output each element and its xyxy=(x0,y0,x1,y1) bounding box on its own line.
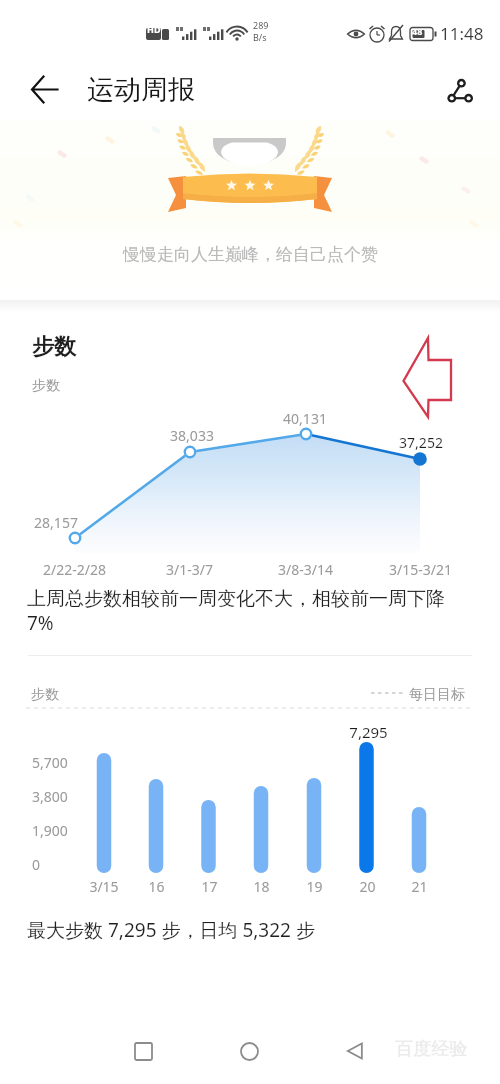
staticText: 38,033 xyxy=(170,426,214,445)
staticText: 最大步数 7,295 步，日均 5,322 步 xyxy=(27,917,315,943)
staticText: 19 xyxy=(306,877,323,896)
staticText: 0 xyxy=(32,855,41,874)
staticText: 上周总步数相较前一周变化不大，相较前一周下降 7% xyxy=(27,587,445,635)
button[interactable]: Home xyxy=(225,1027,273,1075)
staticText: 48 xyxy=(412,25,423,37)
staticText: 40,131 xyxy=(283,409,327,428)
button[interactable]: Share xyxy=(438,70,480,112)
staticText: 5,700 xyxy=(32,753,68,772)
staticText: 17 xyxy=(201,877,218,896)
button[interactable]: Back xyxy=(331,1027,379,1075)
staticText: HD xyxy=(147,23,161,35)
staticText: 3/15 xyxy=(89,877,119,896)
staticText: 步数 xyxy=(32,333,76,361)
staticText: B/s xyxy=(253,31,267,43)
button[interactable]: Back xyxy=(22,68,68,114)
staticText: 11:48 xyxy=(440,22,484,45)
staticText: 百度经验 xyxy=(395,1038,467,1061)
staticText: 21 xyxy=(411,877,428,896)
staticText: 运动周报 xyxy=(87,73,195,107)
button[interactable]: Recents xyxy=(119,1027,167,1075)
staticText: 7,295 xyxy=(349,722,388,742)
staticText: 37,252 xyxy=(399,433,443,452)
staticText: 16 xyxy=(148,877,165,896)
staticText: 28,157 xyxy=(34,513,78,532)
staticText: 1,900 xyxy=(32,821,68,840)
staticText: 步数 xyxy=(31,686,59,704)
staticText: 289 xyxy=(253,19,269,31)
staticText: 2/22-2/28 xyxy=(43,560,106,579)
staticText: 3/8-3/14 xyxy=(278,560,333,579)
staticText: 20 xyxy=(359,877,376,896)
staticText: 慢慢走向人生巅峰，给自己点个赞 xyxy=(123,244,378,265)
staticText: 3/15-3/21 xyxy=(389,560,452,579)
staticText: 18 xyxy=(253,877,270,896)
staticText: 3,800 xyxy=(32,787,68,806)
staticText: 每日目标 xyxy=(409,686,465,704)
staticText: 步数 xyxy=(32,377,60,395)
staticText: 3/1-3/7 xyxy=(166,560,213,579)
